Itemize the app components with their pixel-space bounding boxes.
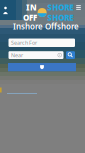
staticText: Near (11, 52, 23, 59)
staticText: Search For (11, 39, 37, 46)
staticText: SHORE (47, 2, 73, 13)
button[interactable]: Search (66, 51, 75, 59)
button[interactable]: Menu (74, 0, 83, 14)
staticText: SHORE (47, 12, 73, 23)
button[interactable]: Account (0, 2, 11, 16)
staticText: IN (26, 2, 37, 13)
staticText: Inshore Offshore (13, 21, 79, 32)
staticText: OFF (23, 12, 37, 23)
